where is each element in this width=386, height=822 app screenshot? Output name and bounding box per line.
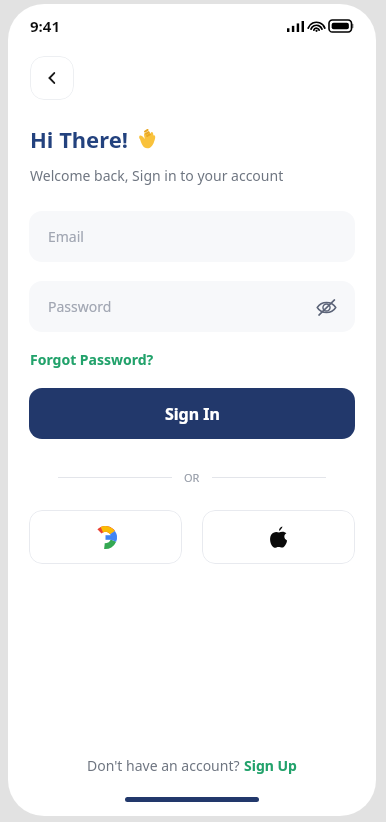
button[interactable]: Password <box>29 281 355 332</box>
button[interactable]: Forgot Password? <box>30 350 154 369</box>
staticText: Email <box>48 227 84 246</box>
button[interactable]: Sign In <box>29 388 355 439</box>
button[interactable]: Back <box>30 56 74 100</box>
button[interactable]: Don't have an account? <box>87 756 297 775</box>
button[interactable]: Sign in with Apple <box>202 510 355 564</box>
staticText: Don't have an account? <box>87 756 244 775</box>
staticText: OR <box>184 470 200 485</box>
staticText: Welcome back, Sign in to your account <box>30 166 284 185</box>
staticText: Sign In <box>165 403 220 425</box>
staticText: Sign Up <box>244 756 297 775</box>
button[interactable]: Sign in with Google <box>29 510 182 564</box>
button[interactable]: Show password <box>311 292 341 322</box>
staticText: Hi There! <box>30 124 128 154</box>
staticText: 9:41 <box>30 16 60 36</box>
button[interactable]: Email <box>29 211 355 262</box>
staticText: Password <box>48 297 112 316</box>
staticText: Forgot Password? <box>30 350 154 369</box>
